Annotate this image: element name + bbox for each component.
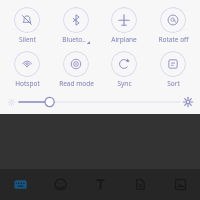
staticText: Sync bbox=[117, 79, 132, 88]
button[interactable]: Rotate off bbox=[151, 7, 195, 44]
button[interactable]: Hotspot bbox=[5, 51, 49, 88]
button[interactable]: Sort bbox=[151, 51, 195, 88]
staticText: Read mode bbox=[59, 79, 94, 88]
button[interactable]: Airplane bbox=[102, 7, 146, 44]
staticText: Sort bbox=[167, 79, 180, 88]
button[interactable]: Brightness settings bbox=[184, 98, 192, 106]
button[interactable]: Blueto.. bbox=[54, 7, 98, 44]
button[interactable]: Keyboard bbox=[0, 169, 40, 200]
staticText: Rotate off bbox=[158, 35, 189, 44]
button[interactable]: Read mode bbox=[54, 51, 98, 88]
other: Low brightness bbox=[8, 99, 15, 106]
button[interactable]: Silent bbox=[5, 7, 49, 44]
staticText: Hotspot bbox=[15, 79, 40, 88]
button[interactable]: Sync bbox=[102, 51, 146, 88]
staticText: Blueto.. bbox=[62, 35, 86, 44]
staticText: Silent bbox=[19, 35, 36, 44]
button[interactable]: Brightness bbox=[19, 96, 180, 108]
staticText: Airplane bbox=[111, 35, 137, 44]
